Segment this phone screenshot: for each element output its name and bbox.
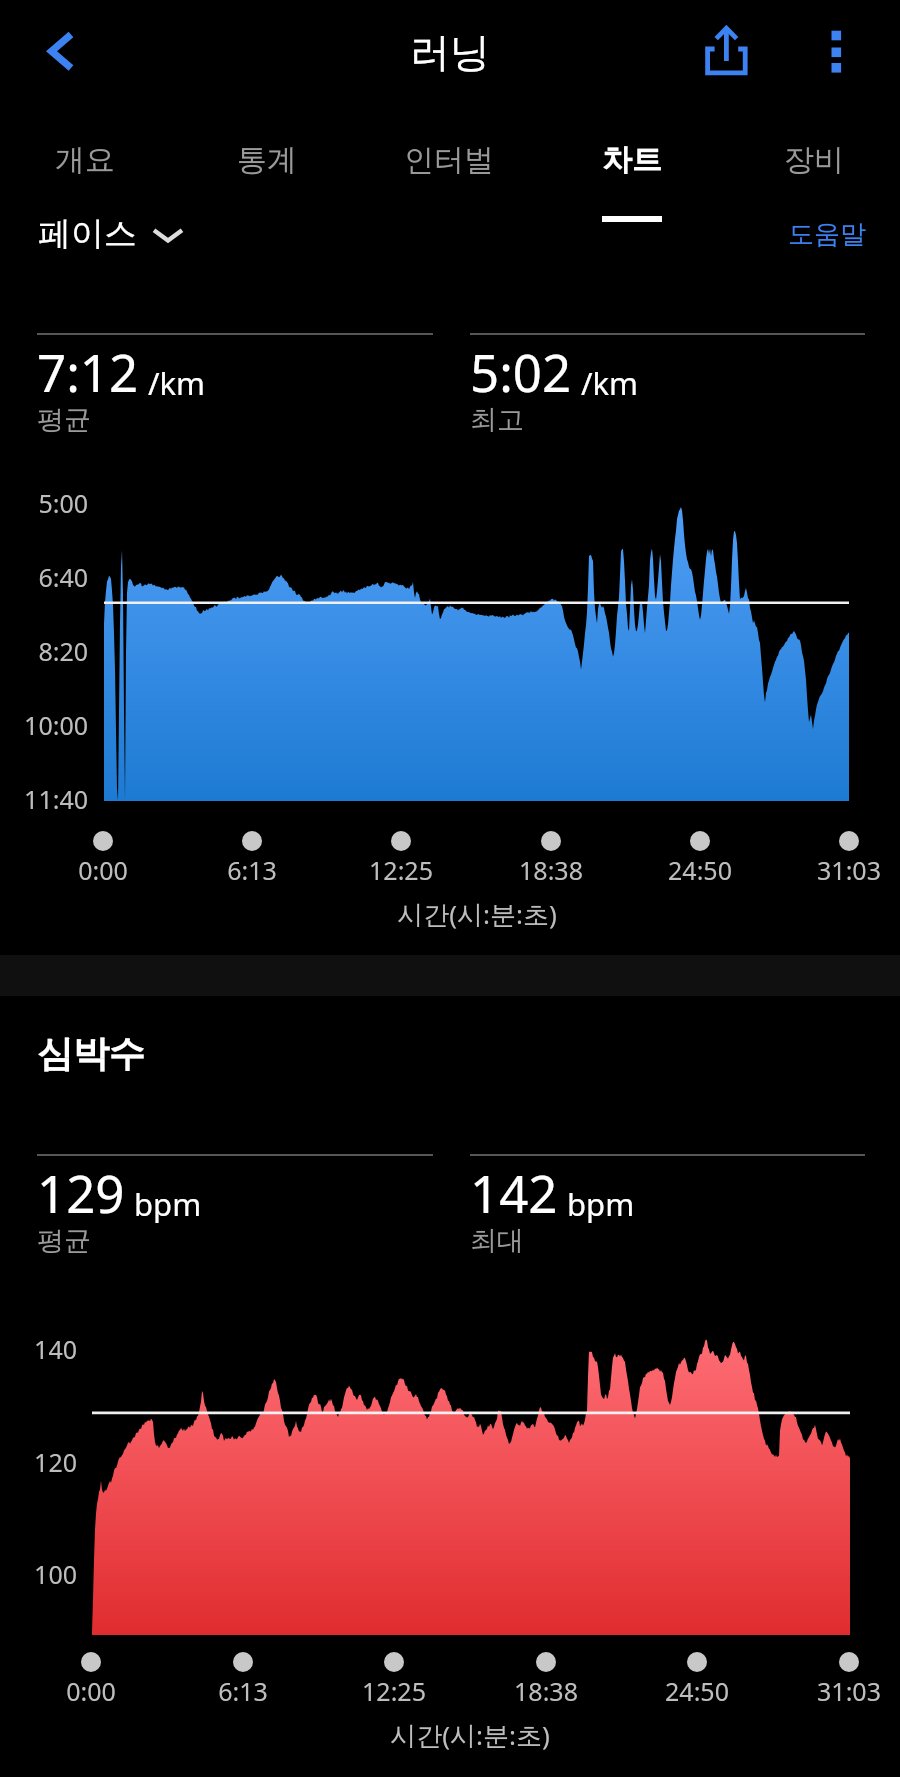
button[interactable]: Back: [26, 22, 82, 78]
button[interactable]: 통계: [197, 122, 337, 232]
staticText: 차트: [602, 141, 662, 179]
staticText: 142: [470, 1158, 558, 1227]
staticText: 평균: [37, 1224, 91, 1258]
button[interactable]: 인터벌: [379, 122, 519, 232]
staticText: 12:25: [362, 1674, 426, 1708]
staticText: 7:12: [37, 337, 139, 406]
staticText: 6:40: [38, 560, 88, 594]
button[interactable]: 장비: [744, 122, 884, 232]
staticText: 5:02: [470, 337, 572, 406]
staticText: 평균: [37, 403, 91, 437]
button[interactable]: 개요: [15, 122, 155, 232]
staticText: /km: [148, 362, 206, 404]
staticText: 24:50: [665, 1674, 729, 1708]
staticText: bpm: [567, 1183, 635, 1225]
button[interactable]: 페이스: [22, 203, 198, 265]
staticText: 129: [37, 1158, 125, 1227]
staticText: 140: [34, 1332, 77, 1366]
staticText: 18:38: [519, 853, 583, 887]
staticText: 11:40: [24, 782, 88, 816]
staticText: 12:25: [369, 853, 433, 887]
staticText: 100: [34, 1557, 77, 1591]
staticText: 인터벌: [404, 141, 494, 179]
staticText: 31:03: [817, 853, 881, 887]
staticText: 심박수: [37, 1031, 145, 1076]
staticText: 10:00: [24, 708, 88, 742]
button[interactable]: More options: [810, 20, 862, 72]
staticText: 0:00: [78, 853, 128, 887]
staticText: 통계: [237, 141, 297, 179]
staticText: 최고: [470, 403, 524, 437]
button[interactable]: 차트: [562, 122, 702, 232]
staticText: 페이스: [38, 213, 137, 255]
staticText: 장비: [784, 141, 844, 179]
staticText: 시간(시:분:초): [397, 896, 557, 932]
button[interactable]: 도움말: [772, 208, 882, 261]
staticText: 최대: [470, 1224, 524, 1258]
staticText: 도움말: [788, 218, 866, 251]
staticText: 시간(시:분:초): [390, 1717, 550, 1753]
staticText: 31:03: [817, 1674, 881, 1708]
staticText: 120: [34, 1445, 77, 1479]
staticText: 8:20: [38, 634, 88, 668]
staticText: 0:00: [66, 1674, 116, 1708]
staticText: /km: [581, 362, 639, 404]
staticText: bpm: [134, 1183, 202, 1225]
button[interactable]: Share: [702, 20, 752, 70]
staticText: 6:13: [227, 853, 277, 887]
staticText: 6:13: [218, 1674, 268, 1708]
staticText: 24:50: [668, 853, 732, 887]
staticText: 러닝: [410, 27, 490, 77]
staticText: 5:00: [38, 486, 88, 520]
staticText: 개요: [55, 141, 115, 179]
staticText: 18:38: [514, 1674, 578, 1708]
